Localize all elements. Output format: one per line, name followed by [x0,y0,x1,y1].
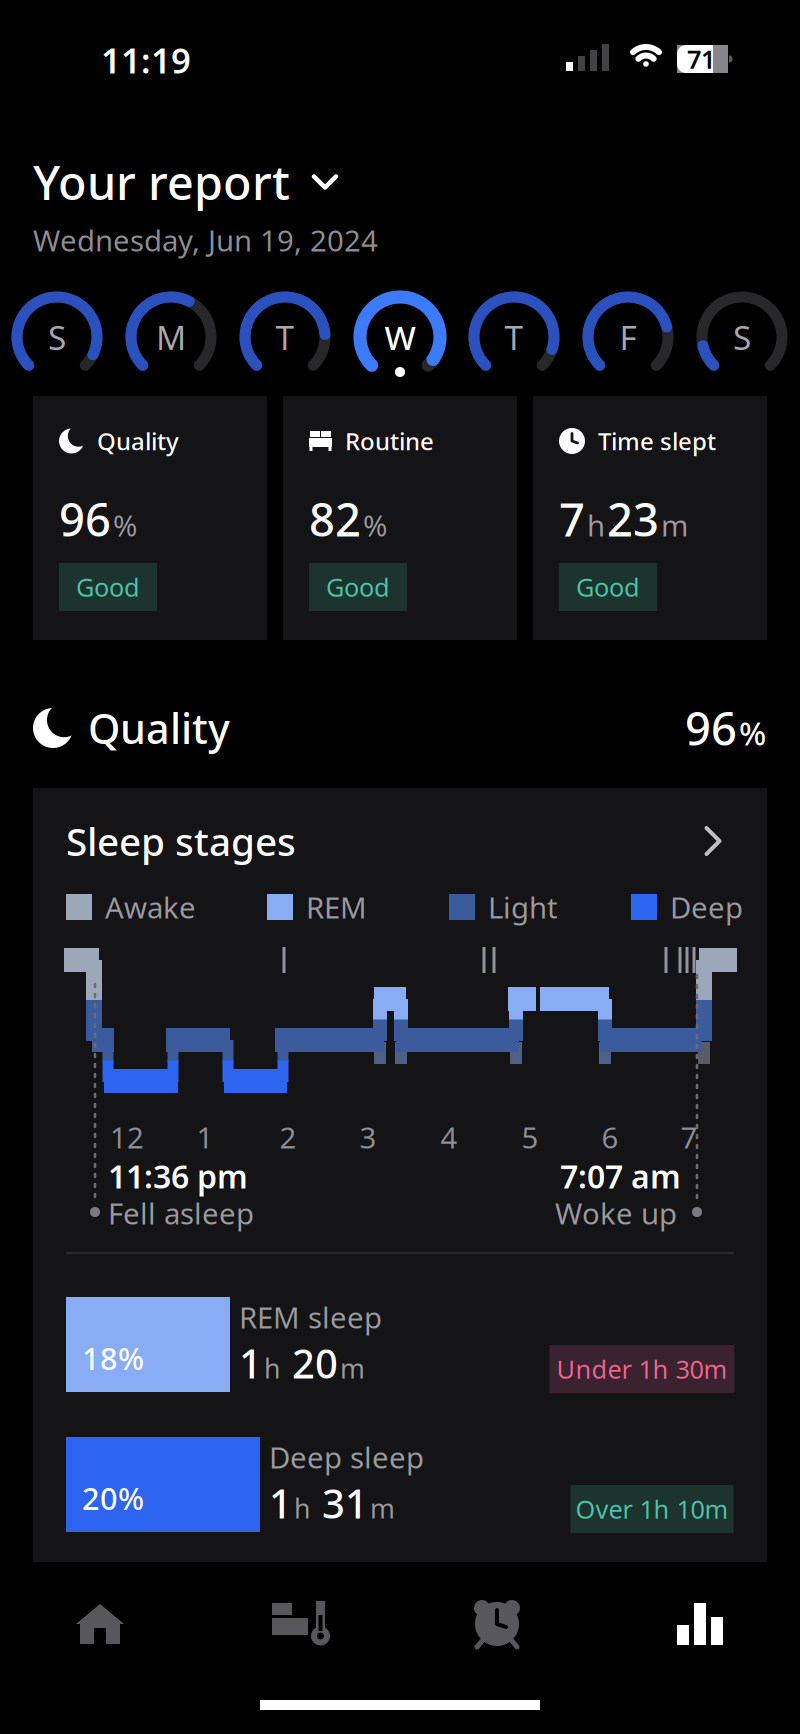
button[interactable]: Sleep stages [33,788,767,894]
staticText: 4 [440,1117,457,1156]
staticText: T [275,315,294,359]
staticText: REM [306,887,367,926]
staticText: Light [488,887,558,926]
button[interactable]: Saturday [697,292,787,382]
staticText: 11:19 [101,37,191,83]
button[interactable]: Time slept [533,396,767,640]
staticText: 23 [607,489,659,549]
staticText: h [264,1350,280,1386]
staticText: 12 [110,1117,144,1156]
staticText: 7:07 am [560,1155,681,1197]
staticText: Time slept [598,425,716,457]
staticText: 7 [680,1117,697,1156]
staticText: Routine [345,425,434,457]
button[interactable]: Routine [283,396,517,640]
staticText: Quality [88,701,230,755]
staticText: S [733,315,751,359]
staticText: M [156,315,186,359]
staticText: Sleep stages [66,815,296,867]
staticText: h [294,1490,310,1526]
staticText: Awake [105,887,196,926]
staticText: 96 [685,698,737,758]
staticText: S [48,315,66,359]
staticText: REM sleep [239,1297,382,1336]
staticText: Over 1h 10m [575,1492,728,1526]
staticText: 82 [309,489,361,549]
staticText: 1 [269,1476,292,1529]
staticText: m [661,506,688,545]
staticText: % [739,712,766,754]
button[interactable]: Sleep [220,1574,380,1674]
staticText: h [587,506,605,545]
button[interactable]: Sunday [12,292,102,382]
staticText: 1 [239,1336,262,1389]
staticText: F [619,315,636,359]
button[interactable]: Alarm [417,1574,577,1674]
staticText: 11:36 pm [108,1155,248,1197]
staticText: 6 [601,1117,618,1156]
staticText: Wednesday, Jun 19, 2024 [33,220,378,259]
staticText: 71 [687,42,715,76]
staticText: Woke up [555,1193,677,1232]
staticText: m [340,1350,365,1386]
button[interactable]: Monday [126,292,216,382]
staticText: Good [576,570,640,604]
staticText: T [504,315,523,359]
staticText: Deep [670,887,743,926]
button[interactable]: Thursday [469,292,559,382]
staticText: % [363,506,387,545]
staticText: % [113,506,137,545]
staticText: 2 [279,1117,296,1156]
staticText: W [384,315,415,359]
staticText: 1 [196,1117,213,1156]
staticText: 96 [59,489,111,549]
staticText: 20% [82,1478,144,1518]
staticText: 20 [282,1336,338,1389]
button[interactable]: Home [20,1574,180,1674]
staticText: 7 [559,489,585,549]
staticText: m [370,1490,395,1526]
staticText: 18% [82,1338,144,1378]
button[interactable]: Your report [33,151,338,213]
staticText: 3 [359,1117,376,1156]
button[interactable]: Wednesday [355,292,445,382]
button[interactable]: Tuesday [240,292,330,382]
staticText: Good [326,570,390,604]
staticText: Deep sleep [269,1437,424,1476]
staticText: Quality [97,425,179,457]
button[interactable]: Reports [620,1574,780,1674]
staticText: 31 [312,1476,368,1529]
staticText: 5 [521,1117,538,1156]
button[interactable]: Friday [583,292,673,382]
staticText: Under 1h 30m [556,1352,727,1386]
staticText: Fell asleep [108,1193,254,1232]
button[interactable]: Quality [33,396,267,640]
staticText: Your report [33,151,290,213]
staticText: Good [76,570,140,604]
